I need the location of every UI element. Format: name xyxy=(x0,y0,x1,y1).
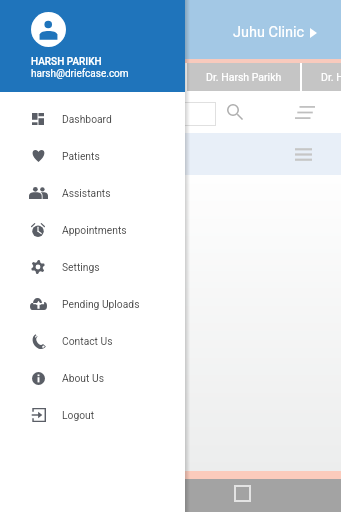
staticText: Dr. Harsh Parikh xyxy=(206,71,282,83)
staticText: Patients xyxy=(62,150,100,162)
staticText: Pending Uploads xyxy=(62,298,140,310)
button[interactable]: Appointments xyxy=(0,211,185,248)
button[interactable]: Menu xyxy=(0,133,341,175)
button[interactable]: Patients xyxy=(0,137,185,174)
button[interactable]: Dr. Harsh Parikh xyxy=(72,63,185,91)
staticText: Assistants xyxy=(62,187,111,199)
button[interactable]: About Us xyxy=(0,359,185,396)
staticText: Settings xyxy=(62,261,100,273)
button[interactable]: Dashboard xyxy=(0,100,185,137)
button[interactable]: Settings xyxy=(0,248,185,285)
button[interactable]: Logout xyxy=(0,396,185,433)
button[interactable]: Dr. Harsh Parikh xyxy=(187,63,300,91)
staticText: Appointments xyxy=(62,224,127,236)
button[interactable] xyxy=(145,102,216,126)
staticText: Contact Us xyxy=(62,335,113,347)
staticText: Logout xyxy=(62,409,95,421)
staticText: harsh@driefcase.com xyxy=(31,68,129,80)
staticText: HARSH PARIKH xyxy=(31,56,102,68)
button[interactable]: Dr. Harsh Parikh xyxy=(302,63,341,91)
staticText: About Us xyxy=(62,372,104,384)
button[interactable]: Juhu Clinic xyxy=(229,18,321,47)
button[interactable]: Menu xyxy=(291,142,315,166)
staticText: Juhu Clinic xyxy=(233,24,305,41)
button[interactable]: Pending Uploads xyxy=(0,285,185,322)
staticText: Dr. Harsh Parikh xyxy=(321,71,341,83)
button[interactable]: Search xyxy=(222,99,246,123)
button[interactable]: Sort xyxy=(291,97,317,123)
staticText: Dr. Harsh Parikh xyxy=(91,71,167,83)
staticText: Dashboard xyxy=(62,113,112,125)
button[interactable]: Assistants xyxy=(0,174,185,211)
button[interactable]: Contact Us xyxy=(0,322,185,359)
button[interactable]: Recents xyxy=(234,485,251,502)
